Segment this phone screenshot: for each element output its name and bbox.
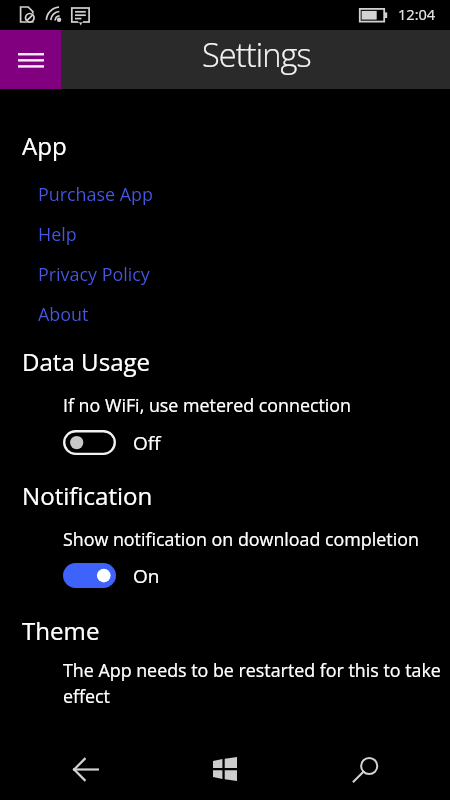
button[interactable]: Back: [0, 726, 150, 800]
button[interactable]: Search: [300, 726, 450, 800]
staticText: App: [22, 129, 67, 162]
button[interactable]: Help: [0, 211, 450, 251]
staticText: Help: [38, 222, 77, 246]
staticText: Theme: [22, 614, 100, 647]
button[interactable]: Menu: [0, 30, 61, 89]
button[interactable]: On: [0, 560, 450, 591]
staticText: Data Usage: [22, 345, 151, 378]
staticText: If no WiFi, use metered connection: [63, 393, 352, 417]
staticText: Off: [133, 430, 161, 456]
button[interactable]: Purchase App: [0, 171, 450, 211]
staticText: On: [133, 563, 160, 589]
staticText: 12:04: [398, 4, 436, 24]
staticText: Show notification on download completion: [63, 527, 419, 551]
staticText: Settings: [202, 32, 311, 76]
staticText: Notification: [22, 479, 153, 512]
button[interactable]: Start: [150, 726, 300, 800]
staticText: The App needs to be restarted for this t…: [63, 658, 450, 708]
button[interactable]: Privacy Policy: [0, 251, 450, 291]
staticText: Privacy Policy: [38, 262, 150, 286]
button[interactable]: Off: [0, 427, 450, 458]
staticText: About: [38, 302, 89, 326]
staticText: Purchase App: [38, 182, 153, 206]
button[interactable]: About: [0, 291, 450, 331]
